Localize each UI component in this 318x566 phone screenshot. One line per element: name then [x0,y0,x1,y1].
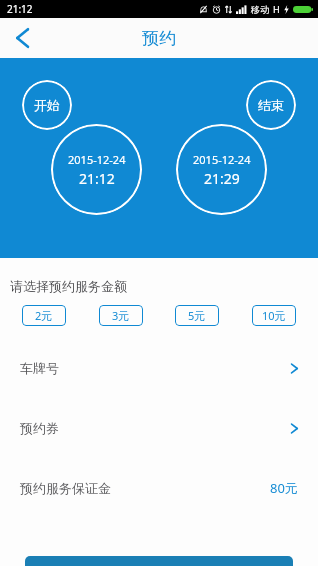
staticText: 10元 [262,308,286,323]
staticText: 5元 [188,308,206,323]
staticText: 预约服务保证金 [20,480,111,496]
staticText: 预约券 [20,420,59,436]
button[interactable]: Back [0,18,44,58]
button[interactable]: 2015-12-24 [176,124,267,215]
staticText: 2015-12-24 [68,152,126,167]
button[interactable]: 车牌号 [0,338,318,398]
staticText: 80元 [270,479,298,497]
staticText: H [273,3,280,15]
button[interactable]: 3元 [99,305,143,326]
staticText: 21:12 [7,2,33,16]
button[interactable] [25,556,293,566]
staticText: 2元 [35,308,53,323]
staticText: 请选择预约服务金额 [10,278,127,294]
button[interactable]: 5元 [175,305,219,326]
button[interactable]: 结束 [246,80,296,130]
button[interactable]: 开始 [22,80,72,130]
staticText: 预约 [142,28,176,49]
staticText: 车牌号 [20,360,59,376]
staticText: 移动 [251,4,269,15]
button[interactable]: 预约服务保证金 [0,458,318,518]
button[interactable]: 2015-12-24 [51,124,142,215]
staticText: 开始 [34,97,60,113]
button[interactable]: 2元 [22,305,66,326]
staticText: 结束 [258,97,284,113]
button[interactable]: 10元 [252,305,296,326]
staticText: 2015-12-24 [193,152,251,167]
staticText: 21:29 [204,169,240,188]
staticText: 21:12 [79,169,115,188]
button[interactable]: 预约券 [0,398,318,458]
staticText: 3元 [112,308,130,323]
